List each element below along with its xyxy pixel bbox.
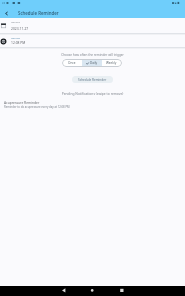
staticText: Pending Notifications (swipe to remove): [0, 91, 185, 95]
button[interactable]: Select Time: [0, 33, 185, 49]
staticText: Choose how often the reminder will trigg…: [0, 53, 185, 57]
staticText: Weekly: [106, 61, 117, 65]
staticText: 12:08 PM: [11, 40, 26, 44]
button[interactable]: Weekly: [102, 59, 121, 67]
staticText: Schedule Reminder: [78, 78, 107, 82]
staticText: Select Date: [11, 21, 20, 23]
button[interactable]: Acupressure Reminder: [0, 100, 185, 109]
staticText: Once: [68, 61, 76, 65]
button[interactable]: Back: [57, 286, 185, 296]
staticText: 2023-11-27: [11, 26, 29, 30]
staticText: Acupressure Reminder: [4, 100, 40, 104]
staticText: Select Time: [11, 37, 21, 39]
button[interactable]: Back: [1, 8, 12, 19]
button[interactable]: Daily: [82, 59, 102, 67]
button[interactable]: Once: [62, 59, 82, 67]
button[interactable]: Schedule Reminder: [72, 76, 113, 83]
staticText: Daily: [90, 61, 98, 65]
staticText: Reminder to do acupressure every day at …: [4, 105, 70, 109]
button[interactable]: Select Date: [0, 18, 185, 35]
staticText: Schedule Reminder: [18, 10, 59, 16]
